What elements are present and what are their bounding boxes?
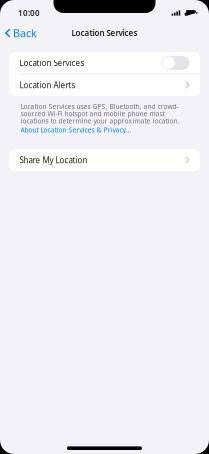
staticText: About Location Services & Privacy...: [20, 125, 131, 134]
button[interactable]: About Location Services & Privacy...: [20, 125, 185, 134]
staticText: Location Services uses GPS, Bluetooth, a…: [20, 102, 179, 125]
button[interactable]: Location Alerts: [9, 74, 200, 96]
staticText: Back: [13, 26, 37, 40]
staticText: Location Alerts: [19, 80, 75, 90]
staticText: Share My Location: [19, 155, 87, 165]
staticText: 10:00: [18, 8, 40, 18]
button[interactable]: Back: [0, 23, 43, 43]
staticText: Location Services: [71, 28, 137, 38]
button[interactable]: Share My Location: [9, 149, 200, 171]
staticText: Location Services: [19, 57, 84, 68]
button[interactable]: Location Services: [161, 56, 189, 70]
